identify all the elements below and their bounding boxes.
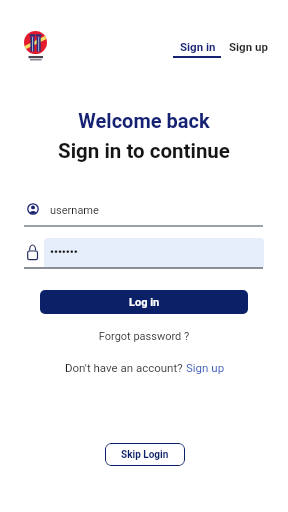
staticText: ••••••• (50, 246, 78, 259)
staticText: Log in (129, 296, 160, 309)
staticText: Don't have an account? (65, 361, 186, 374)
staticText: Sign in to continue (0, 139, 288, 163)
staticText: Sign up (229, 40, 268, 53)
button[interactable]: Sign up (186, 361, 225, 374)
button[interactable] (44, 238, 264, 267)
staticText: Sign in (180, 40, 216, 53)
button[interactable]: Sign in (172, 36, 224, 57)
staticText: Skip Login (121, 449, 169, 461)
button[interactable]: Sign up (222, 36, 274, 57)
button[interactable]: Log in (40, 290, 248, 314)
staticText: Welcome back (0, 109, 288, 132)
button[interactable]: Forgot password ? (0, 330, 288, 343)
staticText: username (50, 204, 99, 217)
button[interactable]: Skip Login (105, 443, 185, 466)
